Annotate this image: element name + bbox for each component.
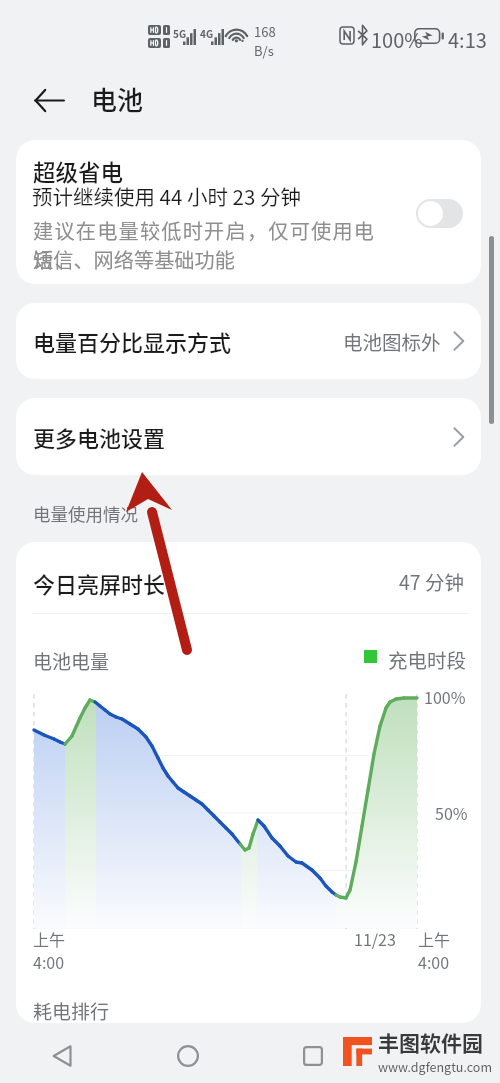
staticText: 50%: [435, 801, 468, 824]
staticText: 短信、网络等基础功能: [33, 245, 235, 274]
staticText: 耗电排行: [33, 997, 110, 1023]
staticText: 100%: [371, 25, 423, 54]
staticText: 4:13: [448, 25, 487, 54]
button[interactable]: Home: [125, 1028, 250, 1083]
staticText: 5G: [173, 26, 187, 40]
button[interactable]: 电量百分比显示方式: [16, 303, 481, 379]
staticText: B/s: [254, 41, 274, 60]
staticText: 更多电池设置: [33, 421, 166, 453]
staticText: 4G: [200, 26, 214, 40]
staticText: 168: [254, 22, 276, 41]
staticText: 超级省电: [33, 155, 124, 188]
button[interactable]: Recents: [250, 1028, 375, 1083]
staticText: 47 分钟: [399, 567, 465, 595]
staticText: 充电时段: [388, 645, 467, 673]
staticText: 上午: [418, 927, 451, 950]
button[interactable]: Back: [26, 77, 72, 123]
staticText: 今日亮屏时长: [33, 567, 166, 599]
staticText: 100%: [424, 685, 466, 708]
staticText: 4:00: [33, 950, 65, 973]
button[interactable]: 超级省电: [416, 199, 463, 228]
staticText: 电量百分比显示方式: [33, 325, 232, 357]
staticText: www.dgfengtu.com: [378, 1057, 492, 1075]
button[interactable]: [33, 994, 481, 1023]
button[interactable]: 更多电池设置: [16, 398, 481, 475]
staticText: 4:00: [418, 950, 450, 973]
button[interactable]: [16, 556, 481, 608]
staticText: 预计继续使用 44 小时 23 分钟: [32, 181, 301, 211]
staticText: 电池: [91, 80, 144, 118]
staticText: 建议在电量较低时开启，仅可使用电话、: [33, 216, 381, 274]
staticText: 上午: [33, 927, 66, 950]
staticText: 11/23: [354, 927, 396, 950]
staticText: 电量使用情况: [33, 501, 138, 526]
staticText: 电池图标外: [343, 327, 441, 355]
button[interactable]: Back: [0, 1028, 125, 1083]
staticText: 电池电量: [33, 647, 110, 675]
staticText: 丰图软件园: [378, 1027, 483, 1057]
